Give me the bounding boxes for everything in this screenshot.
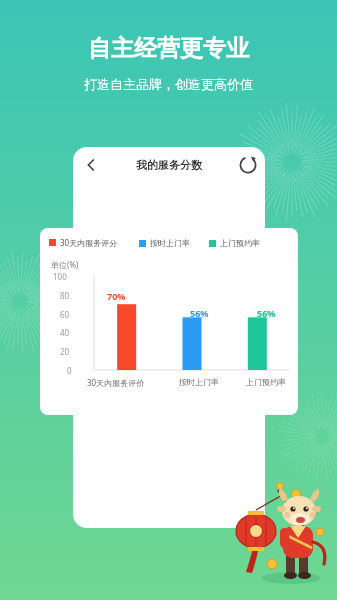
staticText: 40 (60, 327, 70, 338)
button[interactable]: Back (78, 152, 104, 178)
staticText: 按时上门率 (150, 238, 190, 248)
staticText: 自主经营更专业 (88, 34, 249, 63)
button[interactable]: 30天内服务评分 (40, 228, 298, 415)
staticText: 56% (257, 307, 276, 319)
staticText: 打造自主品牌，创造更高价值 (84, 76, 253, 92)
staticText: 按时上门率 (179, 377, 219, 387)
button[interactable]: Refresh (237, 154, 259, 176)
staticText: 30天内服务评分 (60, 237, 118, 248)
staticText: 70% (107, 290, 126, 302)
staticText: 单位(%) (51, 259, 79, 270)
staticText: 上门预约率 (246, 377, 286, 387)
staticText: 60 (60, 309, 70, 320)
staticText: 0 (67, 365, 72, 376)
staticText: 30天内服务评价 (87, 377, 145, 388)
staticText: 56% (190, 307, 209, 319)
staticText: 20 (60, 346, 70, 357)
staticText: 80 (60, 290, 70, 301)
staticText: 我的服务分数 (136, 158, 202, 172)
staticText: 上门预约率 (220, 238, 260, 248)
staticText: 100 (53, 271, 67, 282)
